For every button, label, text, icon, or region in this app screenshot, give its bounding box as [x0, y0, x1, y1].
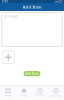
button[interactable]: Add Item	[23, 71, 40, 76]
staticText: Settings	[50, 94, 61, 97]
button[interactable]: Home	[0, 87, 16, 99]
staticText: 9:41	[2, 0, 9, 3]
staticText: Plants	[20, 94, 28, 97]
staticText: Profile	[35, 94, 45, 97]
button[interactable]: Plants	[16, 87, 32, 99]
staticText: Add Item	[22, 4, 41, 10]
button[interactable]: Add photo	[2, 51, 14, 63]
button[interactable]: Settings	[48, 87, 64, 99]
staticText: Home	[4, 94, 12, 97]
button[interactable]: Profile	[32, 87, 48, 99]
staticText: Item name	[4, 15, 18, 18]
staticText: Add Item	[25, 72, 39, 75]
